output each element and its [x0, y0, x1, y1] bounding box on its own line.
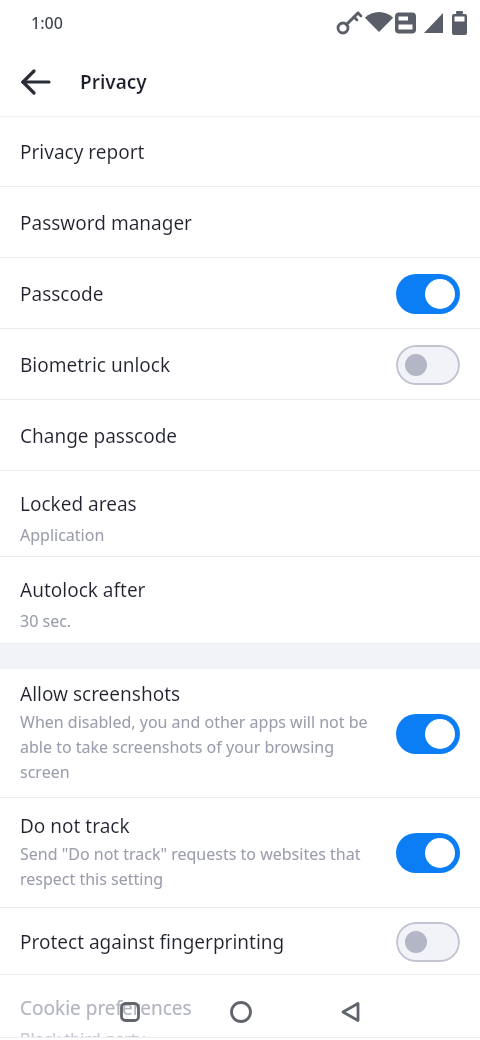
- button[interactable]: Password manager: [0, 187, 480, 258]
- button[interactable]: [396, 345, 460, 385]
- button[interactable]: Do not track: [0, 798, 480, 908]
- staticText: Do not track: [20, 813, 130, 839]
- staticText: Passcode: [20, 281, 104, 307]
- button[interactable]: [396, 922, 460, 962]
- button[interactable]: Change passcode: [0, 400, 480, 471]
- staticText: Cookie preferences: [20, 995, 192, 1021]
- button[interactable]: [396, 274, 460, 314]
- staticText: Password manager: [20, 210, 192, 236]
- staticText: Block third-party: [20, 1028, 146, 1038]
- button[interactable]: Protect against fingerprinting: [0, 908, 480, 975]
- button[interactable]: Passcode: [0, 258, 480, 329]
- button[interactable]: [108, 990, 152, 1034]
- button[interactable]: Locked areas: [0, 471, 480, 557]
- staticText: Biometric unlock: [20, 352, 171, 378]
- staticText: Privacy: [80, 69, 147, 95]
- button[interactable]: Autolock after: [0, 557, 480, 644]
- staticText: Privacy report: [20, 139, 145, 165]
- button[interactable]: Cookie preferences: [0, 975, 480, 1038]
- staticText: Application: [20, 524, 105, 546]
- button[interactable]: [219, 990, 263, 1034]
- staticText: Send "Do not track" requests to websites…: [20, 843, 361, 889]
- button[interactable]: [396, 833, 460, 873]
- staticText: 1:00: [31, 12, 63, 34]
- button[interactable]: Privacy report: [0, 117, 480, 187]
- staticText: Locked areas: [20, 491, 137, 517]
- staticText: 30 sec.: [20, 610, 72, 632]
- button[interactable]: [14, 60, 58, 104]
- staticText: Allow screenshots: [20, 681, 181, 707]
- button[interactable]: Allow screenshots: [0, 669, 480, 798]
- button[interactable]: Biometric unlock: [0, 329, 480, 400]
- button[interactable]: [396, 714, 460, 754]
- staticText: When disabled, you and other apps will n…: [20, 711, 368, 782]
- staticText: Protect against fingerprinting: [20, 929, 285, 955]
- staticText: Change passcode: [20, 423, 178, 449]
- staticText: Autolock after: [20, 577, 146, 603]
- button[interactable]: [329, 990, 373, 1034]
